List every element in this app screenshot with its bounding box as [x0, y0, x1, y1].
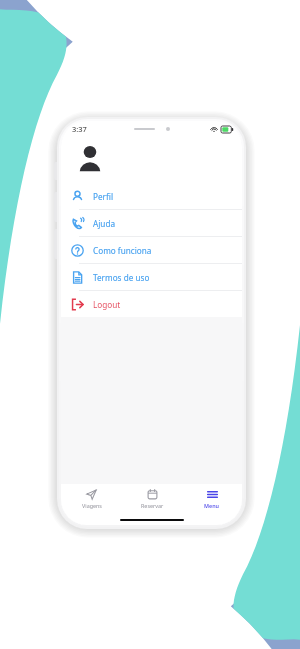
- button[interactable]: Perfil: [61, 183, 242, 209]
- staticText: Viagens: [82, 502, 102, 509]
- other: Profile avatar: [75, 143, 105, 173]
- staticText: Perfil: [93, 191, 113, 202]
- staticText: 3:37: [72, 124, 87, 134]
- staticText: Menu: [204, 502, 220, 509]
- staticText: Como funciona: [93, 245, 152, 256]
- staticText: Logout: [93, 299, 121, 310]
- button[interactable]: Ajuda: [61, 210, 242, 236]
- staticText: Reservar: [141, 502, 164, 509]
- button[interactable]: Menu: [182, 484, 242, 514]
- button[interactable]: Termos de uso: [61, 264, 242, 290]
- button[interactable]: Viagens: [61, 484, 122, 514]
- button[interactable]: Como funciona: [61, 237, 242, 263]
- button[interactable]: Reservar: [122, 484, 182, 514]
- staticText: Ajuda: [93, 218, 116, 229]
- button[interactable]: Logout: [61, 291, 242, 317]
- staticText: Termos de uso: [93, 272, 150, 283]
